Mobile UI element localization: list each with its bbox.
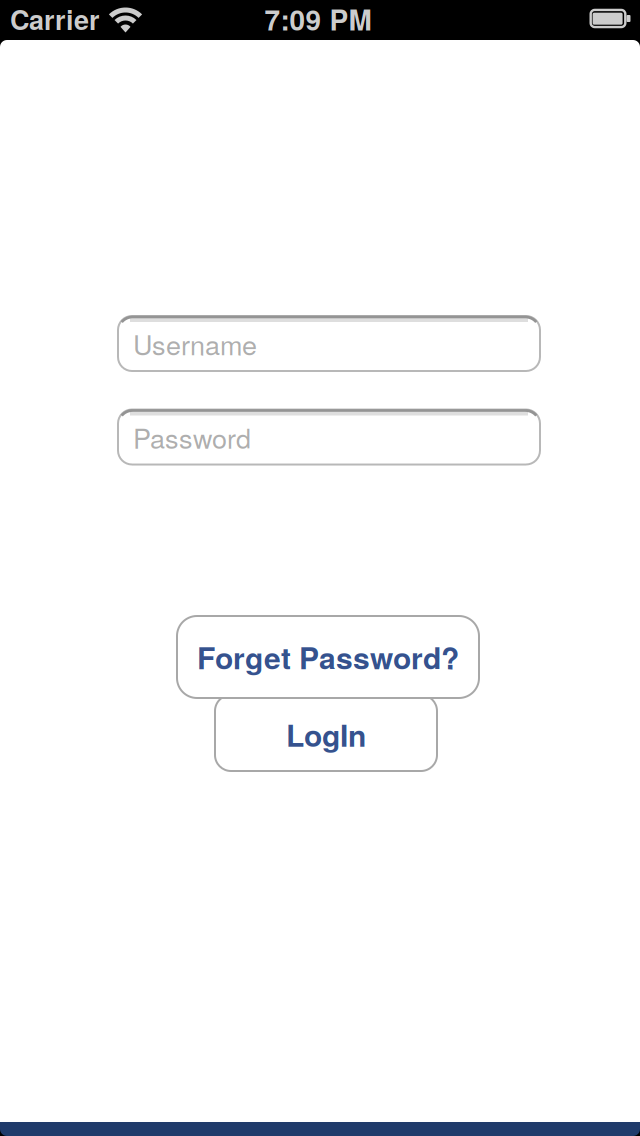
button[interactable]: LogIn: [214, 694, 438, 772]
button[interactable]: Password: [117, 408, 541, 465]
staticText: Forget Password?: [197, 635, 459, 678]
staticText: LogIn: [286, 713, 366, 756]
staticText: Username: [133, 324, 257, 363]
staticText: Password: [133, 418, 251, 456]
button[interactable]: Username: [117, 315, 541, 372]
staticText: 7:09 PM: [264, 0, 371, 39]
button[interactable]: Forget Password?: [176, 615, 480, 699]
staticText: Carrier: [10, 0, 100, 38]
